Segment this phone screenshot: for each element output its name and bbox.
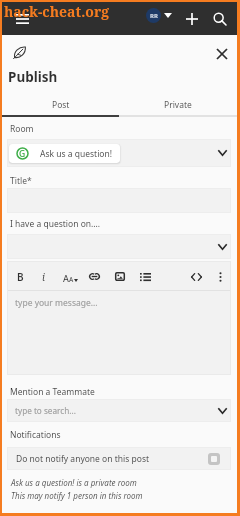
- button[interactable]: G: [7, 139, 231, 167]
- button[interactable]: RR: [144, 6, 174, 25]
- button[interactable]: type your message...: [15, 297, 98, 309]
- staticText: A: [69, 275, 74, 284]
- staticText: Notifications: [10, 429, 61, 441]
- button[interactable]: More options: [210, 262, 230, 291]
- staticText: I have a question on....: [10, 218, 101, 230]
- button[interactable]: Insert link: [84, 262, 104, 291]
- staticText: RR: [150, 12, 158, 20]
- staticText: type to search...: [15, 405, 76, 416]
- staticText: This may notify 1 person in this room: [11, 490, 143, 501]
- button[interactable]: Post: [2, 90, 119, 119]
- button[interactable]: Italic: [34, 262, 54, 291]
- button[interactable]: Bulleted list: [135, 262, 155, 291]
- button[interactable]: Bold: [10, 262, 30, 291]
- staticText: B: [17, 270, 24, 284]
- button[interactable]: Insert image: [110, 262, 130, 291]
- button[interactable]: Create new: [180, 7, 203, 30]
- staticText: Title*: [10, 175, 32, 187]
- button[interactable]: Text size: [60, 262, 80, 291]
- staticText: Ask us a question! is a private room: [11, 477, 137, 488]
- staticText: Room: [10, 123, 34, 135]
- staticText: hack-cheat.org: [4, 2, 110, 21]
- button[interactable]: [7, 234, 231, 259]
- button[interactable]: Search: [208, 7, 231, 30]
- staticText: Publish: [8, 68, 58, 86]
- staticText: type your message...: [15, 297, 98, 309]
- button[interactable]: type to search...: [7, 399, 231, 422]
- staticText: Do not notify anyone on this post: [16, 453, 150, 465]
- staticText: G: [19, 148, 26, 160]
- staticText: Ask us a question!: [40, 148, 113, 160]
- staticText: Mention a Teammate: [10, 386, 95, 398]
- staticText: Private: [164, 99, 192, 111]
- button[interactable]: Close: [210, 42, 234, 66]
- staticText: i: [42, 270, 46, 284]
- staticText: Post: [52, 99, 70, 111]
- button[interactable]: Navigation menu: [10, 7, 34, 31]
- button[interactable]: Code block: [186, 262, 206, 291]
- button[interactable]: Do not notify anyone on this post: [7, 447, 231, 470]
- button[interactable]: Private: [119, 90, 237, 119]
- staticText: A: [63, 272, 69, 284]
